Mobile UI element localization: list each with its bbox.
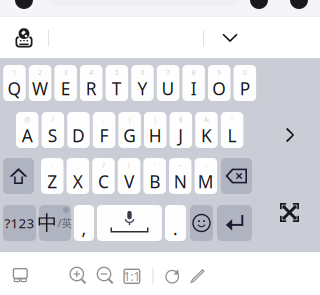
staticText: ) [154, 115, 156, 124]
button[interactable]: Edit [183, 262, 211, 290]
button[interactable]: Next keyboard [2, 19, 46, 57]
staticText: . [51, 161, 53, 170]
button[interactable]: Hide keyboard [205, 19, 255, 57]
button[interactable]: W [29, 65, 51, 101]
staticText: H [149, 124, 162, 147]
staticText: G [123, 124, 136, 147]
staticText: ( [129, 115, 131, 124]
staticText: $ [179, 115, 183, 124]
button[interactable]: P [234, 65, 256, 101]
staticText: 9 [217, 68, 221, 77]
staticText: ; [103, 115, 105, 124]
staticText: ? [102, 161, 105, 170]
button[interactable]: Emoji [190, 205, 213, 241]
staticText: S [48, 124, 58, 147]
button[interactable]: Rotate [159, 262, 187, 290]
button[interactable]: D [67, 112, 90, 148]
staticText: L [228, 124, 237, 147]
staticText: " [231, 115, 234, 124]
staticText: , [77, 161, 79, 170]
button[interactable]: X [67, 158, 89, 194]
button[interactable]: . [165, 205, 186, 241]
staticText: C [98, 170, 109, 193]
staticText: D [72, 124, 85, 147]
staticText: ?123 [4, 214, 34, 232]
button[interactable]: I [182, 65, 205, 101]
staticText: ~ [178, 161, 182, 170]
staticText: : [77, 115, 79, 124]
staticText: 3 [64, 68, 68, 77]
button[interactable]: J [170, 112, 192, 148]
staticText: Q [7, 77, 21, 100]
staticText: B [149, 170, 160, 193]
staticText: A [22, 124, 33, 147]
staticText: / [52, 115, 54, 124]
button[interactable]: Screen layout [5, 261, 35, 291]
button[interactable]: L [221, 112, 243, 148]
button[interactable]: R [80, 65, 102, 101]
button[interactable]: Next page [268, 117, 312, 153]
staticText: 2 [38, 68, 42, 77]
staticText: T [112, 77, 122, 100]
staticText: 6 [140, 68, 144, 77]
staticText: O [212, 77, 226, 100]
button[interactable]: T [106, 65, 128, 101]
button[interactable]: Y [131, 65, 154, 101]
staticText: 8 [192, 68, 196, 77]
staticText: J [178, 124, 183, 147]
staticText: W [32, 77, 48, 100]
button[interactable]: V [118, 158, 140, 194]
button[interactable]: B [143, 158, 166, 194]
button[interactable]: A [16, 112, 38, 148]
staticText: R [86, 77, 97, 100]
button[interactable]: Shift [3, 158, 34, 194]
staticText: 1:1 [123, 268, 140, 284]
button[interactable]: Expand keyboard [267, 194, 311, 230]
staticText: & [204, 115, 209, 124]
button[interactable]: Zoom in [64, 262, 92, 290]
staticText: ! [128, 161, 130, 170]
staticText: I [191, 77, 197, 100]
button[interactable]: U [157, 65, 179, 101]
button[interactable]: Chinese English [39, 205, 71, 241]
button[interactable]: E [54, 65, 77, 101]
button[interactable]: Q [3, 65, 26, 101]
button[interactable]: G [118, 112, 141, 148]
staticText: Y [137, 77, 147, 100]
button[interactable]: Return [217, 205, 252, 241]
staticText: 5 [115, 68, 119, 77]
button[interactable]: Space [97, 205, 162, 241]
staticText: @ [24, 115, 30, 124]
staticText: N [174, 170, 187, 193]
button[interactable]: H [144, 112, 166, 148]
button[interactable]: S [42, 112, 64, 148]
staticText: X [73, 170, 83, 193]
staticText: 7 [166, 68, 170, 77]
staticText: 中 [37, 211, 57, 235]
button[interactable]: , [74, 205, 94, 241]
button[interactable]: Zoom out [91, 262, 119, 290]
staticText: U [162, 77, 175, 100]
button[interactable]: K [195, 112, 218, 148]
staticText: M [198, 170, 214, 193]
button[interactable]: Actual size [118, 262, 146, 290]
staticText: Z [47, 170, 57, 193]
staticText: F [100, 124, 109, 147]
button[interactable]: N [169, 158, 191, 194]
staticText: , [81, 217, 86, 240]
staticText: E [61, 77, 71, 100]
staticText: 4 [89, 68, 93, 77]
button[interactable]: Z [41, 158, 63, 194]
button[interactable]: O [208, 65, 230, 101]
staticText: 1 [12, 68, 16, 77]
staticText: ' [154, 161, 156, 170]
staticText: P [240, 77, 250, 100]
button[interactable]: Delete [221, 158, 252, 194]
staticText: - [205, 161, 207, 170]
button[interactable]: Numbers and symbols [3, 205, 36, 241]
staticText: K [201, 124, 212, 147]
staticText: 0 [243, 68, 247, 77]
button[interactable]: M [195, 158, 217, 194]
button[interactable]: C [92, 158, 115, 194]
button[interactable]: F [93, 112, 115, 148]
